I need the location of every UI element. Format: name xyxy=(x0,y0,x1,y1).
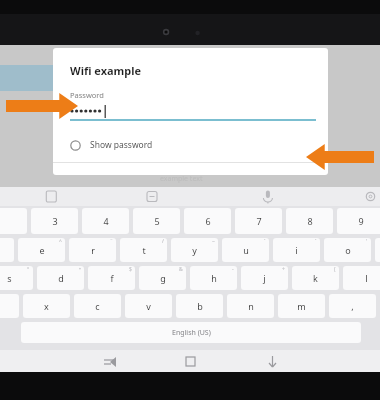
staticText: m xyxy=(297,300,306,312)
button[interactable]: s xyxy=(0,266,33,290)
staticText: 7 xyxy=(256,215,262,227)
button[interactable]: n xyxy=(227,294,274,318)
staticText: k xyxy=(313,272,318,284)
staticText: 8 xyxy=(307,215,313,227)
button[interactable]: 7 xyxy=(235,208,282,234)
staticText: ` xyxy=(264,238,266,245)
staticText: ~ xyxy=(212,238,215,245)
button[interactable] xyxy=(70,104,316,121)
staticText: 6 xyxy=(205,215,211,227)
staticText: l xyxy=(365,272,368,284)
button[interactable]: 4 xyxy=(82,208,129,234)
staticText: b xyxy=(197,300,203,312)
staticText: • xyxy=(79,266,81,273)
button[interactable]: Home xyxy=(173,350,207,372)
staticText: ( xyxy=(334,266,336,273)
staticText: y xyxy=(192,244,197,256)
staticText: - xyxy=(232,266,234,273)
staticText: / xyxy=(162,238,164,245)
button[interactable]: y xyxy=(171,238,218,262)
button[interactable]: i xyxy=(273,238,320,262)
staticText: Wifi example xyxy=(70,63,142,78)
button[interactable]: f xyxy=(88,266,135,290)
staticText: ° xyxy=(27,266,30,273)
staticText: ' xyxy=(366,238,368,245)
staticText: 5 xyxy=(154,215,160,227)
staticText: e xyxy=(39,244,45,256)
staticText: f xyxy=(110,272,114,284)
button[interactable]: g xyxy=(139,266,186,290)
button[interactable]: m xyxy=(278,294,325,318)
button[interactable]: 9 xyxy=(337,208,380,234)
button[interactable]: o xyxy=(324,238,371,262)
staticText: 3 xyxy=(52,215,58,227)
staticText: Show password xyxy=(90,139,153,151)
staticText: i xyxy=(295,244,298,256)
button[interactable]: English (US) xyxy=(21,322,361,343)
button[interactable]: CONNECT xyxy=(266,163,320,175)
staticText: ¨ xyxy=(110,238,113,245)
button[interactable]: t xyxy=(120,238,167,262)
staticText: j xyxy=(263,272,266,284)
staticText: + xyxy=(282,266,285,273)
button[interactable]: 5 xyxy=(133,208,180,234)
staticText: 4 xyxy=(103,215,109,227)
button[interactable]: d xyxy=(37,266,84,290)
staticText: t xyxy=(142,244,146,256)
staticText: o xyxy=(345,244,351,256)
button[interactable]: l xyxy=(343,266,380,290)
staticText: ´ xyxy=(315,238,317,245)
button[interactable]: 3 xyxy=(31,208,78,234)
button[interactable]: c xyxy=(74,294,121,318)
button[interactable]: u xyxy=(222,238,269,262)
button[interactable]: Hide keyboard xyxy=(255,350,289,372)
staticText: g xyxy=(160,272,166,284)
button[interactable]: 6 xyxy=(184,208,231,234)
button[interactable]: , xyxy=(329,294,376,318)
staticText: n xyxy=(248,300,254,312)
staticText: u xyxy=(243,244,249,256)
staticText: s xyxy=(7,272,12,284)
staticText: x xyxy=(44,300,49,312)
staticText: r xyxy=(91,244,95,256)
button[interactable]: Show password xyxy=(53,134,328,156)
staticText: ^ xyxy=(59,238,62,245)
staticText: v xyxy=(146,300,151,312)
staticText: c xyxy=(95,300,100,312)
button[interactable]: j xyxy=(241,266,288,290)
staticText: $ xyxy=(129,266,132,273)
button[interactable]: x xyxy=(23,294,70,318)
staticText: h xyxy=(211,272,217,284)
staticText: example text xyxy=(160,174,203,184)
button[interactable]: v xyxy=(125,294,172,318)
staticText: English (US) xyxy=(172,328,211,338)
button[interactable]: Back xyxy=(91,350,125,372)
button[interactable]: r xyxy=(69,238,116,262)
button[interactable]: k xyxy=(292,266,339,290)
button[interactable]: h xyxy=(190,266,237,290)
button[interactable]: 8 xyxy=(286,208,333,234)
button[interactable]: e xyxy=(18,238,65,262)
button[interactable]: b xyxy=(176,294,223,318)
staticText: d xyxy=(58,272,64,284)
staticText: & xyxy=(179,266,183,273)
staticText: Password xyxy=(70,90,104,100)
staticText: 9 xyxy=(358,215,364,227)
staticText: , xyxy=(351,300,354,312)
